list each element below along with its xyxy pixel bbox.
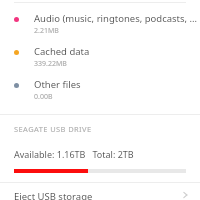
staticText: Other files xyxy=(34,78,81,91)
staticText: 339.22MB xyxy=(34,59,67,69)
staticText: Audio (music, ringtones, podcasts, etc.) xyxy=(34,12,200,25)
button[interactable]: Audio (music, ringtones, podcasts, etc.) xyxy=(0,8,200,41)
staticText: 2.21MB xyxy=(34,26,59,36)
staticText: Cached data xyxy=(34,45,90,58)
button[interactable]: Cached data xyxy=(0,41,200,74)
button[interactable]: Eject USB storage xyxy=(0,190,200,200)
staticText: Available: 1.16TB Total: 2TB xyxy=(14,148,134,160)
staticText: SEAGATE USB DRIVE xyxy=(14,124,92,134)
staticText: 0.00B xyxy=(34,92,53,102)
other: Open eject USB storage xyxy=(180,190,192,200)
button[interactable]: Other files xyxy=(0,74,200,107)
staticText: Eject USB storage xyxy=(14,190,93,200)
